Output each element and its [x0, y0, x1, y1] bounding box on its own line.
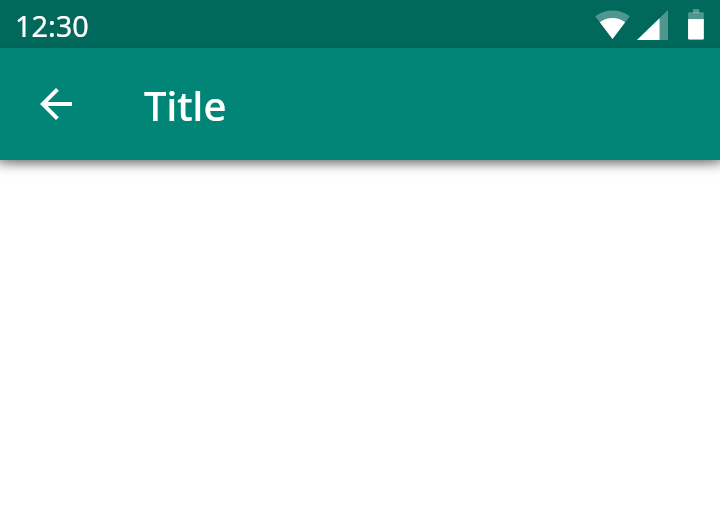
staticText: 12:30 — [15, 6, 89, 45]
button[interactable]: Navigate up — [32, 80, 80, 128]
staticText: Title — [144, 78, 227, 132]
